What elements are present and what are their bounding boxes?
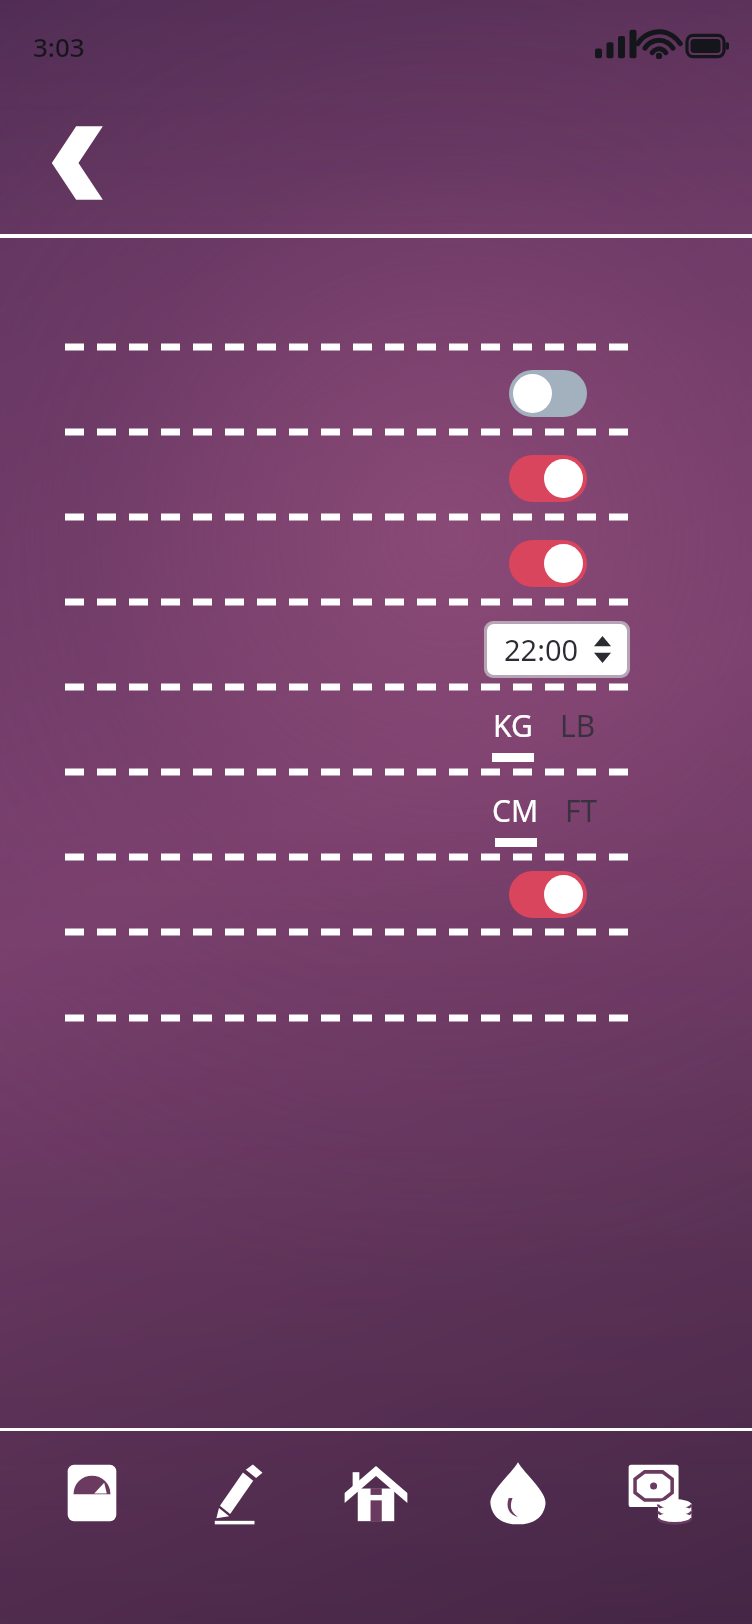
button[interactable]: Notes xyxy=(184,1443,284,1543)
button[interactable]: KG xyxy=(492,705,534,762)
button[interactable]: Setting disabled xyxy=(509,370,587,417)
staticText: 3:03 xyxy=(33,29,85,64)
button[interactable]: Home xyxy=(326,1443,426,1543)
staticText: 22:00 xyxy=(504,630,579,669)
button[interactable]: Setting enabled xyxy=(509,455,587,502)
button[interactable]: CM xyxy=(492,790,539,847)
button[interactable]: LB xyxy=(560,705,596,746)
button[interactable]: Setting enabled xyxy=(509,540,587,587)
staticText: FT xyxy=(565,790,598,831)
button[interactable]: 22:00 xyxy=(487,624,627,675)
button[interactable]: Water intake xyxy=(468,1443,568,1543)
staticText: LB xyxy=(560,705,596,746)
staticText: CM xyxy=(492,790,539,831)
button[interactable]: Setting enabled xyxy=(509,871,587,918)
button[interactable]: Back xyxy=(46,124,104,202)
button[interactable]: FT xyxy=(565,790,598,831)
staticText: KG xyxy=(493,705,533,746)
button[interactable]: Weight scale xyxy=(42,1443,142,1543)
button[interactable]: Budget xyxy=(610,1443,710,1543)
